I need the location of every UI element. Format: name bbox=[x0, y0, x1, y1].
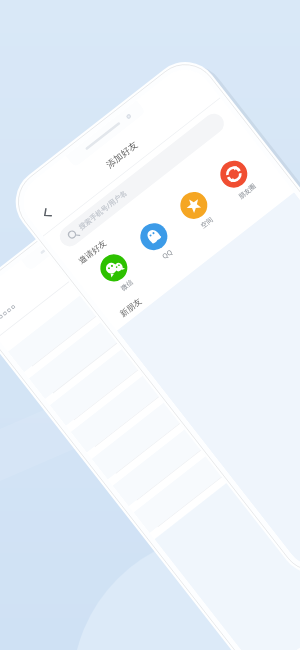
button[interactable]: Add friend app screen mockup bbox=[0, 0, 300, 650]
